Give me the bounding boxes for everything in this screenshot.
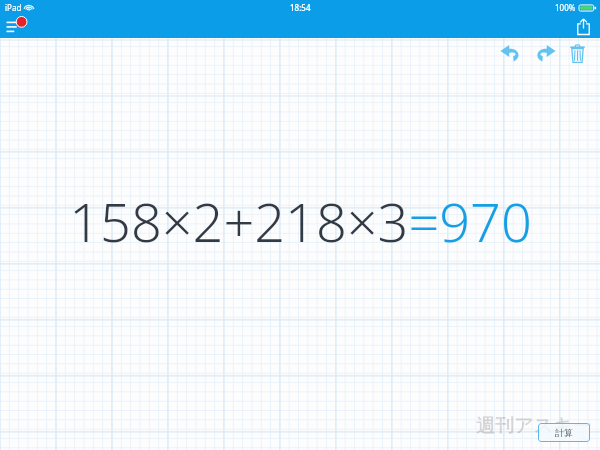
staticText: 100% [555, 2, 576, 13]
button[interactable]: Menu [6, 15, 36, 37]
staticText: 18:54 [290, 2, 311, 13]
button[interactable]: 計算 [538, 423, 590, 442]
staticText: 計算 [555, 427, 573, 438]
staticText: 158×2+218×3=970 [69, 184, 532, 258]
button[interactable]: Undo [494, 40, 528, 66]
staticText: 週刊アスキー [476, 414, 592, 438]
staticText: iPad [5, 2, 22, 13]
button[interactable]: Delete [562, 40, 592, 66]
button[interactable]: Redo [528, 40, 562, 66]
button[interactable]: Share [571, 15, 595, 37]
